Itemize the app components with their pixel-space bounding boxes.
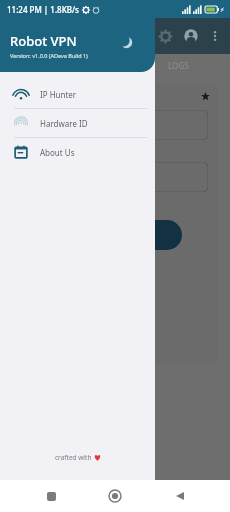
staticText: ⚡ (220, 6, 225, 13)
staticText: IP Hunter (40, 89, 77, 100)
button[interactable]: Back (166, 482, 194, 510)
button[interactable]: Hardware ID (0, 109, 155, 137)
button[interactable] (22, 220, 182, 250)
button[interactable]: Settings (152, 23, 178, 49)
button[interactable]: Account (178, 23, 204, 49)
staticText: About Us (40, 147, 75, 158)
button[interactable]: Toggle dark mode (115, 31, 137, 53)
button[interactable]: Home (101, 482, 129, 510)
button[interactable]: More options (204, 25, 226, 47)
button[interactable]: Recent apps (37, 482, 65, 510)
staticText: Version: v1.0.0 (ADeva Build 1) (10, 52, 88, 59)
staticText: crafted with (55, 453, 94, 462)
button[interactable]: About Us (0, 138, 155, 166)
button[interactable]: IP Hunter (0, 80, 155, 108)
staticText: Robot VPN (10, 32, 77, 50)
staticText: LOGS (168, 60, 189, 71)
staticText: 11:24 PM | 1.8KB/s (7, 4, 79, 15)
staticText: Hardware ID (40, 118, 88, 129)
